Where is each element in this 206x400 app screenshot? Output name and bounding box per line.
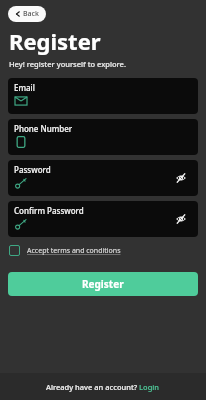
staticText: Phone Number [14, 123, 73, 134]
staticText: Back [23, 9, 39, 19]
staticText: Confirm Password [14, 205, 84, 216]
button[interactable]: Email [8, 78, 198, 114]
staticText: Register [9, 26, 101, 56]
staticText: Email [14, 82, 35, 93]
button[interactable]: Back [8, 6, 46, 22]
staticText: Accept terms and conditions [27, 246, 121, 256]
staticText: Already have an account? Login [46, 382, 160, 392]
button[interactable]: Register [8, 272, 198, 296]
button[interactable]: Phone Number [8, 119, 198, 155]
button[interactable]: Toggle password visibility [176, 214, 186, 224]
staticText: Password [14, 164, 51, 175]
button[interactable]: Already have an account? Login [46, 382, 160, 392]
staticText: Register [82, 277, 124, 291]
button[interactable]: Password [8, 160, 198, 196]
button[interactable]: Confirm Password [8, 201, 198, 237]
button[interactable]: Accept terms and conditions [8, 243, 122, 258]
staticText: Hey! register yourself to explore. [9, 59, 126, 69]
button[interactable]: Toggle password visibility [176, 173, 186, 183]
